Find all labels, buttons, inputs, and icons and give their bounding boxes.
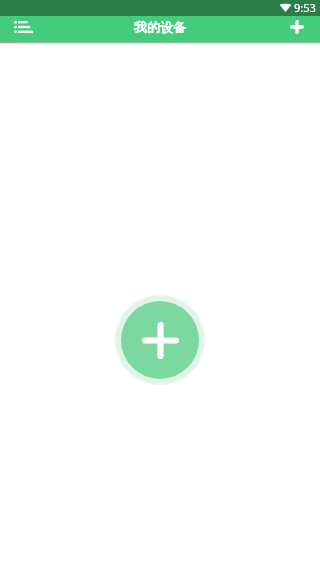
button[interactable]: Menu (9, 15, 37, 39)
staticText: 9:53 (294, 0, 316, 14)
staticText: 我的设备 (134, 19, 186, 35)
button[interactable]: Add (284, 16, 310, 37)
button[interactable]: Add device (114, 294, 206, 386)
